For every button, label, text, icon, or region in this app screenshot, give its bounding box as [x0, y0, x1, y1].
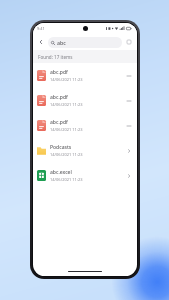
staticText: abc.pdf [50, 119, 68, 126]
staticText: 9:41 [37, 26, 45, 31]
staticText: Found: 17 items [38, 54, 73, 60]
staticText: abc.pdf [50, 69, 68, 76]
button[interactable]: abc.excel [33, 163, 137, 188]
button[interactable]: Back [36, 37, 46, 47]
button[interactable]: abc.pdf [33, 88, 137, 113]
button[interactable]: abc [48, 37, 122, 48]
staticText: 14/06/2021 11:23 [50, 177, 83, 182]
button[interactable]: abc.pdf [33, 113, 137, 138]
button[interactable]: Open folder [124, 171, 133, 180]
button[interactable]: Clear [124, 37, 134, 47]
button[interactable]: More options [124, 121, 133, 130]
staticText: 14/06/2021 11:23 [50, 152, 83, 157]
button[interactable]: More options [124, 71, 133, 80]
button[interactable]: More options [124, 96, 133, 105]
staticText: abc.pdf [50, 94, 68, 101]
staticText: 14/06/2021 11:23 [50, 102, 83, 107]
button[interactable]: abc.pdf [33, 63, 137, 88]
button[interactable]: Podcasts [33, 138, 137, 163]
button[interactable]: Open folder [124, 146, 133, 155]
staticText: abc [57, 39, 66, 46]
staticText: abc.excel [50, 169, 72, 176]
staticText: 14/06/2021 11:23 [50, 77, 83, 82]
staticText: 14/06/2021 11:23 [50, 127, 83, 132]
staticText: Podcasts [50, 144, 72, 151]
